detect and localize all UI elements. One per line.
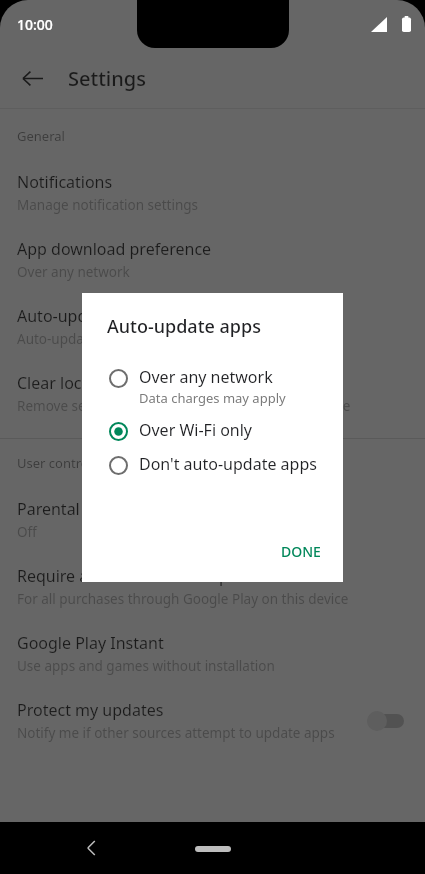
staticText: Over any network: [17, 263, 130, 281]
staticText: Auto-update apps over Wi-Fi only: [17, 330, 227, 348]
button[interactable]: Require authentication for purchases: [0, 554, 425, 621]
staticText: Manage notification settings: [17, 196, 199, 214]
staticText: Notify me if other sources attempt to up…: [17, 724, 335, 742]
staticText: Use apps and games without installation: [17, 657, 275, 675]
button[interactable]: App download preference: [0, 227, 425, 294]
staticText: Parental controls: [17, 498, 145, 520]
button[interactable]: Back: [10, 56, 54, 100]
button[interactable]: DONE: [271, 535, 331, 568]
staticText: Protect my updates: [17, 699, 164, 721]
staticText: Over Wi-Fi only: [139, 419, 253, 441]
staticText: Require authentication for purchases: [17, 565, 296, 587]
button[interactable]: Google Play Instant: [0, 621, 425, 688]
staticText: App download preference: [17, 238, 212, 260]
button[interactable]: Parental controls: [0, 487, 425, 554]
staticText: 10:00: [17, 15, 53, 34]
staticText: General: [17, 127, 65, 145]
staticText: Settings: [68, 65, 146, 92]
staticText: Over any network: [139, 366, 273, 388]
staticText: Off: [17, 523, 37, 541]
button[interactable]: Don't auto-update apps: [82, 447, 343, 481]
staticText: User controls: [17, 454, 99, 472]
button[interactable]: Back: [70, 826, 114, 870]
staticText: Don't auto-update apps: [139, 453, 317, 475]
staticText: DONE: [281, 542, 321, 561]
button[interactable]: Over any network: [82, 360, 343, 413]
staticText: Data charges may apply: [139, 389, 286, 407]
staticText: Auto-update apps: [107, 314, 261, 339]
button[interactable]: Protect my updates: [0, 688, 425, 755]
staticText: Notifications: [17, 171, 113, 193]
staticText: Clear local search history: [17, 372, 205, 394]
staticText: Auto-update apps: [17, 305, 152, 327]
button[interactable]: Notifications: [0, 160, 425, 227]
staticText: For all purchases through Google Play on…: [17, 590, 349, 608]
button[interactable]: Auto-update apps: [0, 294, 425, 361]
button[interactable]: Over Wi-Fi only: [82, 413, 343, 447]
staticText: Google Play Instant: [17, 632, 164, 654]
button[interactable]: Clear local search history: [0, 361, 425, 428]
staticText: Remove searches you have performed on th…: [17, 397, 351, 415]
